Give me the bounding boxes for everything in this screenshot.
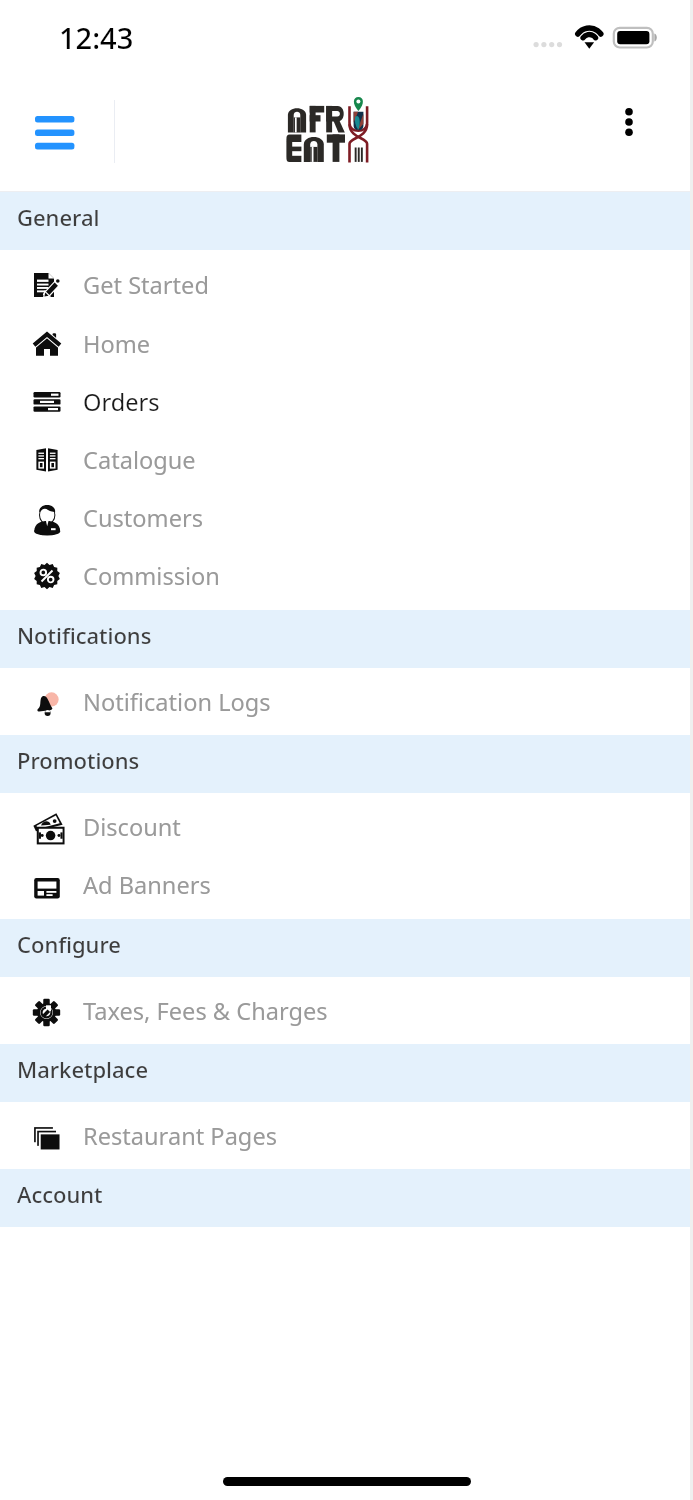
button[interactable]: Open navigation menu [24,105,84,161]
staticText: Catalogue [83,444,196,476]
staticText: Configure [17,929,121,959]
staticText: Taxes, Fees & Charges [83,995,328,1027]
staticText: General [17,202,100,232]
staticText: Discount [83,811,181,843]
button[interactable]: Get Started [0,255,693,314]
staticText: Promotions [17,745,140,775]
button[interactable]: Ad Banners [0,856,693,914]
staticText: 12:43 [59,18,134,57]
button[interactable]: More options [606,97,651,147]
staticText: Customers [83,502,203,534]
staticText: Get Started [83,269,209,301]
button[interactable]: Taxes, Fees & Charges [0,982,693,1039]
staticText: Marketplace [17,1054,149,1084]
staticText: Home [83,328,151,360]
button[interactable]: Catalogue [0,431,693,489]
staticText: Ad Banners [83,869,211,901]
button[interactable]: Discount [0,798,693,856]
button[interactable]: Orders [0,373,693,431]
button[interactable]: Notification Logs [0,673,693,730]
button[interactable]: Restaurant Pages [0,1107,693,1164]
staticText: Notifications [17,620,152,650]
staticText: Account [17,1179,103,1209]
staticText: Notification Logs [83,686,271,718]
button[interactable]: Commission [0,547,693,605]
button[interactable]: Home [0,314,693,373]
staticText: Restaurant Pages [83,1120,277,1152]
staticText: Commission [83,560,220,592]
staticText: Orders [83,386,160,418]
button[interactable]: Customers [0,489,693,547]
